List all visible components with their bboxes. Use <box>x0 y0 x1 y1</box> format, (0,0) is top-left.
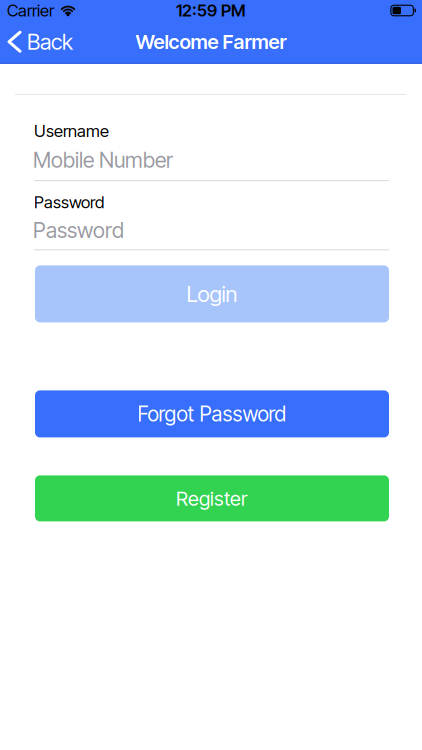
staticText: Back <box>27 28 73 55</box>
staticText: Welcome Farmer <box>135 30 286 54</box>
staticText: Register <box>176 486 248 510</box>
button[interactable]: Forgot Password <box>35 390 389 437</box>
button[interactable]: Back <box>0 28 81 55</box>
button[interactable]: Register <box>35 475 389 521</box>
button[interactable]: Login <box>35 265 389 322</box>
staticText: Mobile Number <box>33 147 173 173</box>
staticText: Forgot Password <box>137 401 286 426</box>
staticText: Login <box>186 281 237 307</box>
staticText: Password <box>33 217 124 243</box>
staticText: 12:59 PM <box>176 0 246 21</box>
staticText: Password <box>34 192 104 212</box>
staticText: Username <box>34 121 109 141</box>
staticText: Carrier <box>7 0 54 21</box>
